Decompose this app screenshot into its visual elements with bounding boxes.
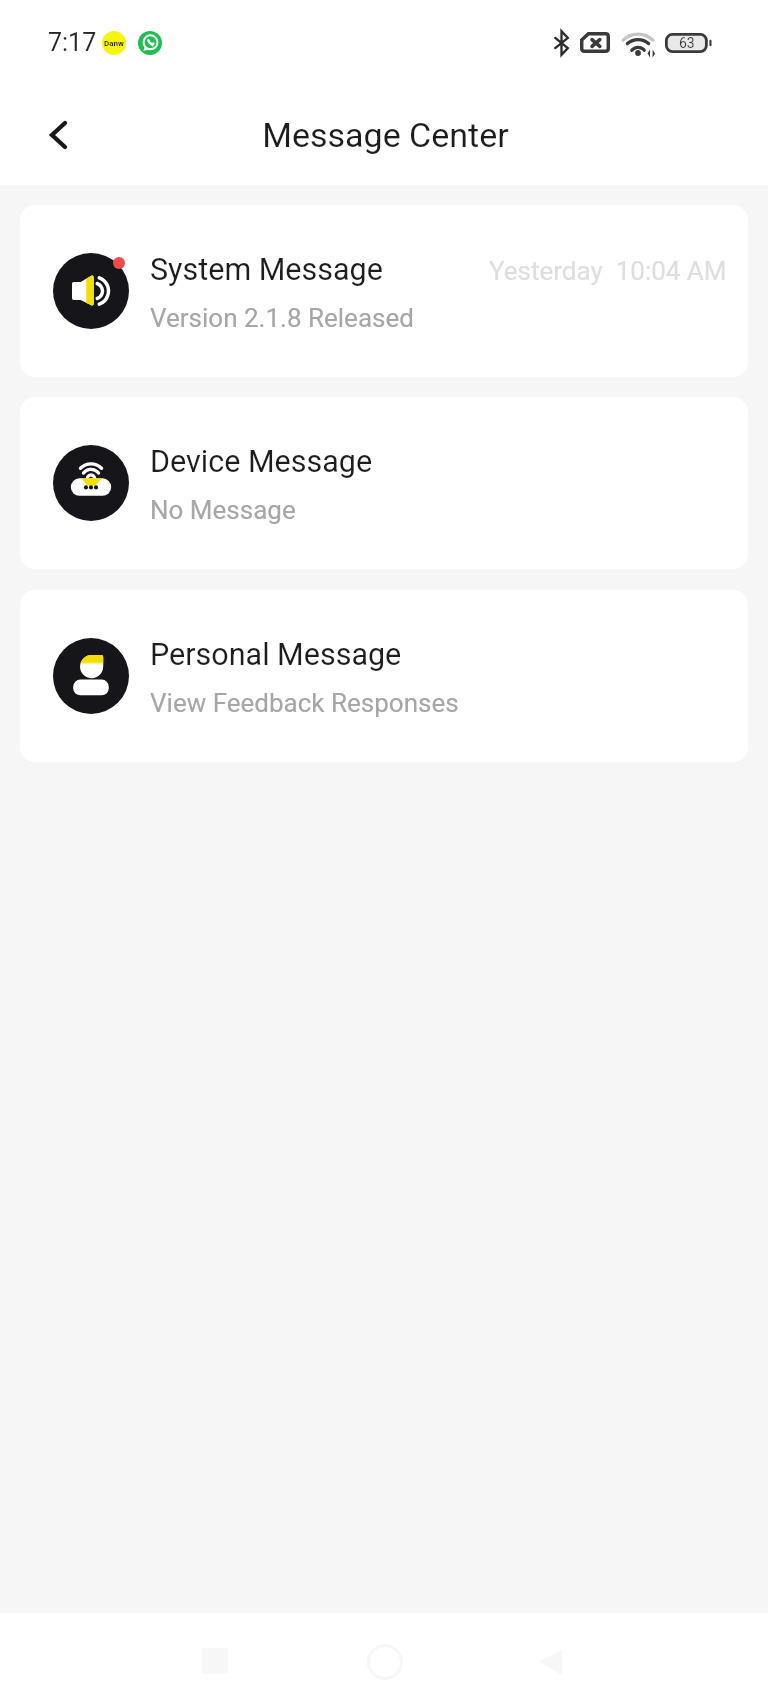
staticText: Device Message	[150, 444, 373, 480]
staticText: Danw	[104, 39, 124, 48]
button[interactable]: Device Message	[20, 397, 748, 569]
staticText: Personal Message	[150, 637, 402, 673]
staticText: View Feedback Responses	[150, 688, 459, 718]
staticText: 7:17	[48, 28, 97, 57]
button[interactable]: Back	[29, 106, 87, 164]
staticText: Yesterday 10:04 AM	[489, 256, 727, 286]
button[interactable]: System Message	[20, 205, 748, 377]
staticText: Message Center	[262, 115, 509, 155]
staticText: No Message	[150, 495, 296, 525]
staticText: Version 2.1.8 Released	[150, 303, 414, 333]
staticText: System Message	[150, 252, 383, 288]
staticText: 63	[679, 35, 695, 51]
button[interactable]: Personal Message	[20, 590, 748, 762]
